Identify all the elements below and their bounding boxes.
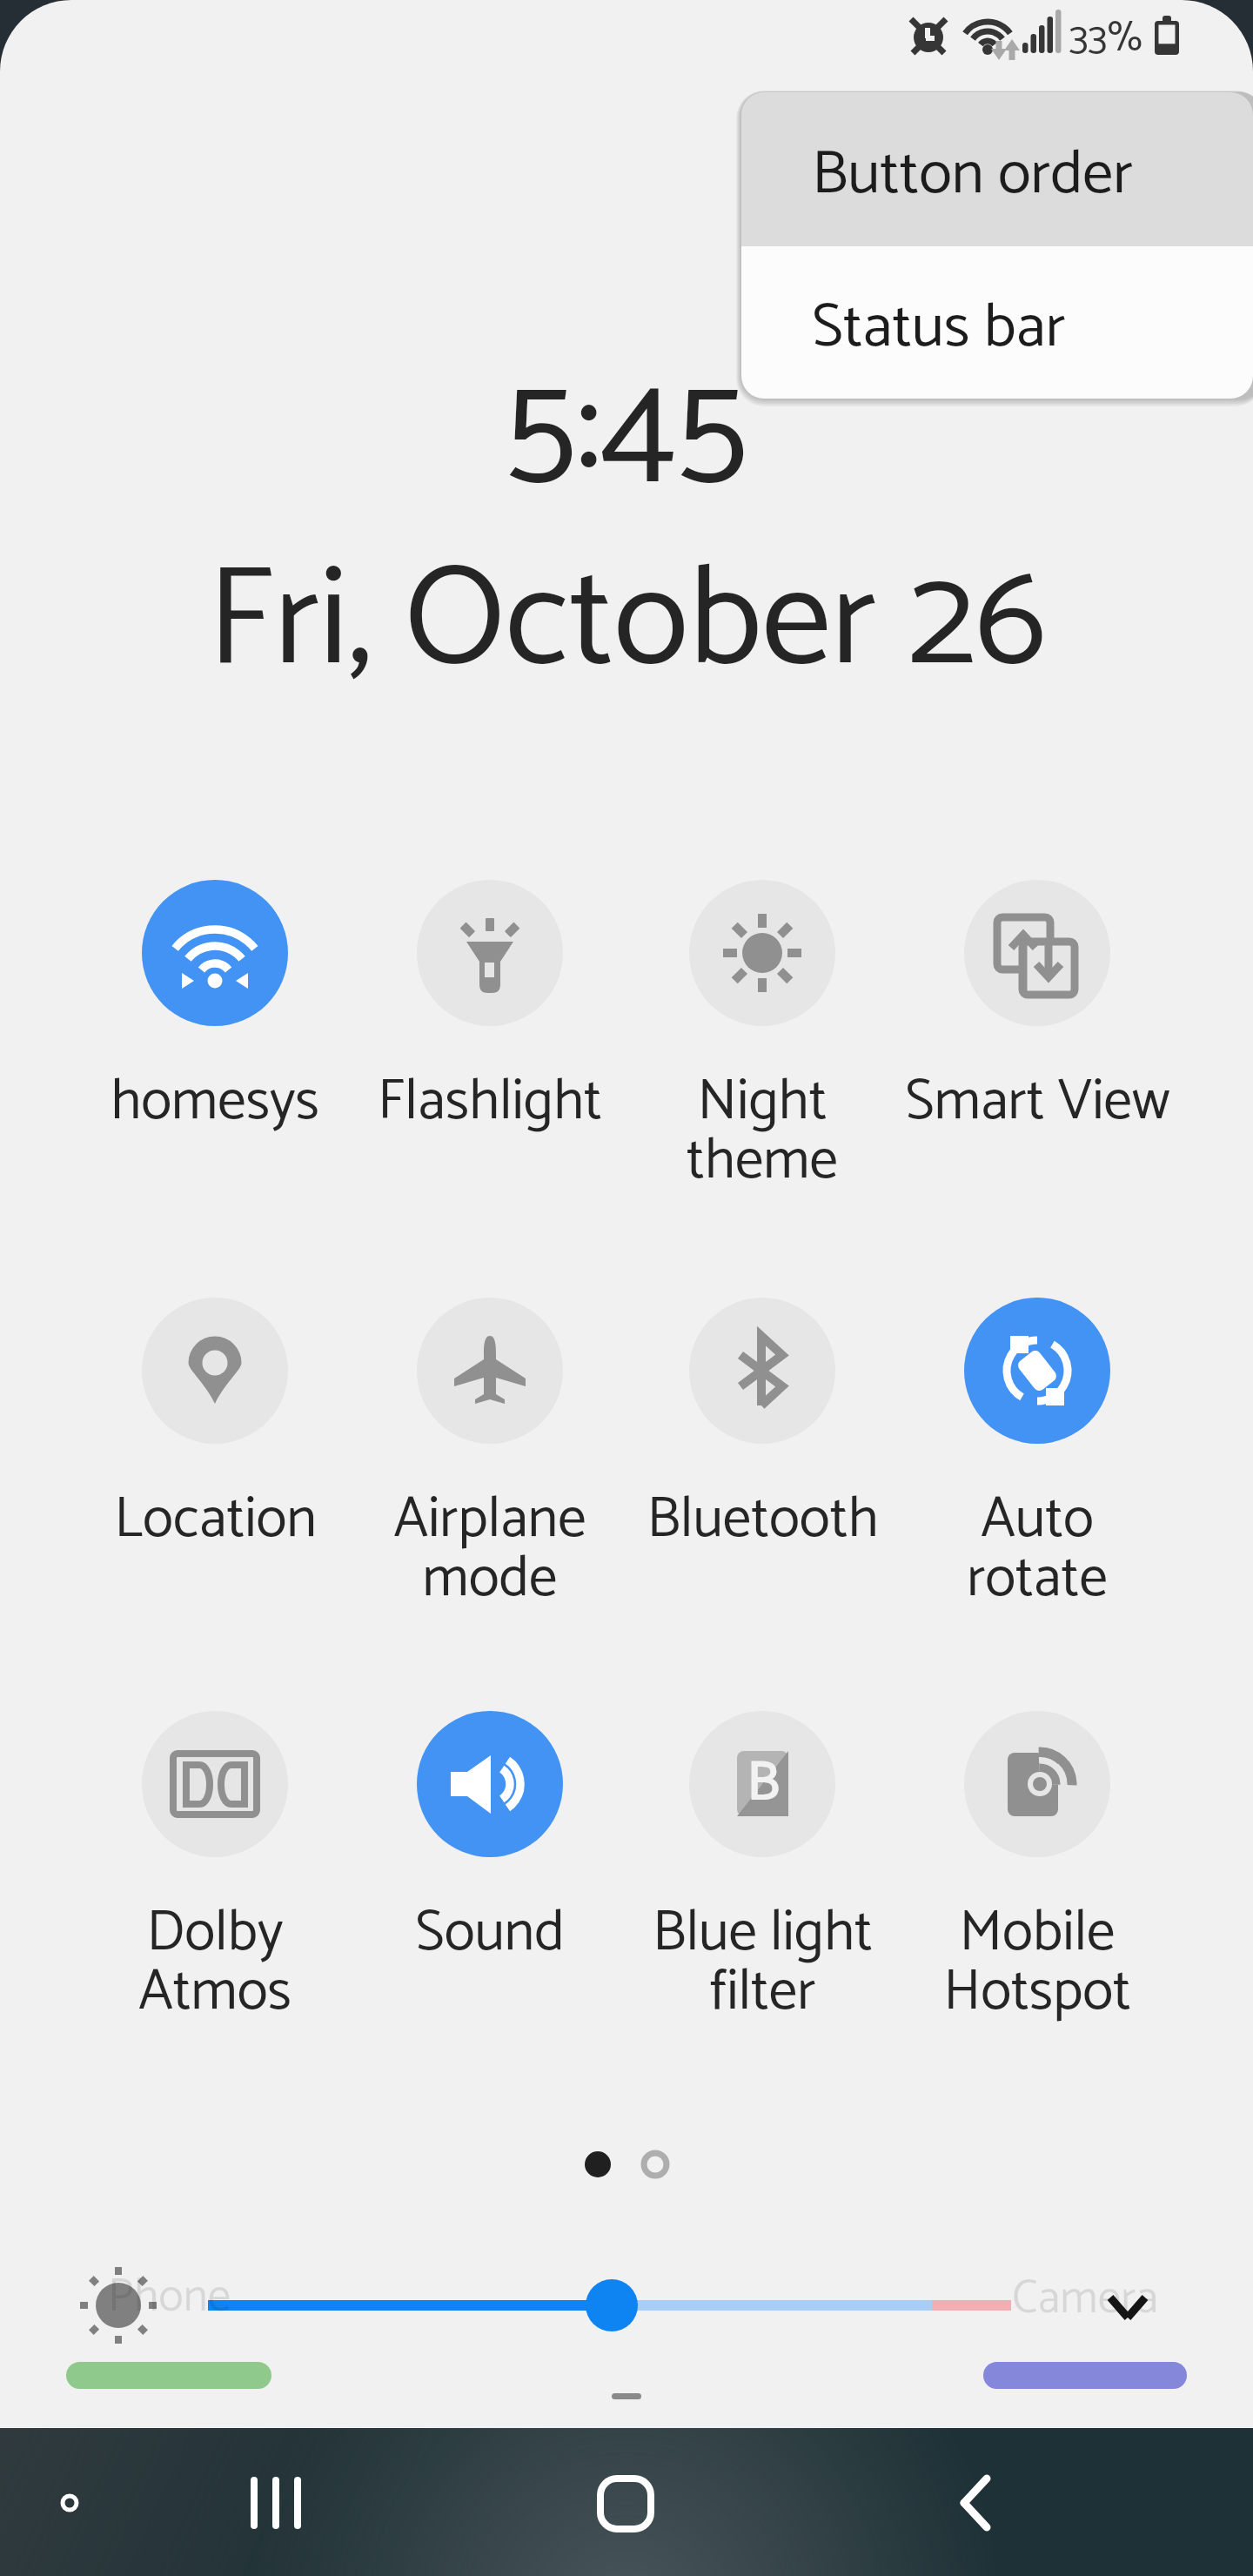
button[interactable]: Smart View [901, 880, 1174, 1149]
staticText: Status bar [812, 278, 1066, 379]
button[interactable]: Location [78, 1298, 352, 1566]
staticText: Camera [1012, 2262, 1159, 2338]
staticText: Mobile Hotspot [943, 1887, 1131, 2039]
staticText: 33% [1069, 5, 1143, 72]
staticText: Location [114, 1473, 317, 1566]
button[interactable]: Recents [198, 2451, 354, 2555]
button[interactable]: Status bar [741, 246, 1253, 399]
button[interactable]: Night theme [626, 880, 899, 1208]
button[interactable]: Button order [741, 92, 1253, 246]
button[interactable]: Home [573, 2451, 678, 2555]
button[interactable]: homesys [78, 880, 352, 1149]
staticText: Dolby Atmos [138, 1887, 291, 2039]
button[interactable]: Keyboard [35, 2468, 104, 2538]
button[interactable]: Dolby Atmos [78, 1711, 352, 2039]
button[interactable]: Bluetooth [626, 1298, 899, 1566]
button[interactable]: Flashlight [353, 880, 626, 1149]
staticText: 5:45 [505, 312, 748, 549]
button[interactable]: Airplane mode [353, 1298, 626, 1626]
staticText: B [747, 1740, 780, 1828]
staticText: Airplane mode [393, 1473, 586, 1626]
staticText: homesys [111, 1056, 319, 1149]
button[interactable]: Sound [353, 1711, 626, 1980]
button[interactable]: Mobile Hotspot [901, 1711, 1174, 2039]
button[interactable]: Auto rotate [901, 1298, 1174, 1626]
staticText: Blue light filter [653, 1887, 873, 2039]
staticText: Button order [812, 125, 1133, 225]
staticText: Fri, October 26 [207, 509, 1047, 737]
staticText: Phone [108, 2260, 231, 2336]
button[interactable]: Back [923, 2451, 1028, 2555]
staticText: Auto rotate [967, 1473, 1108, 1626]
button[interactable]: B [626, 1711, 899, 2039]
staticText: Sound [415, 1887, 565, 1980]
staticText: Night theme [687, 1056, 838, 1208]
staticText: Smart View [905, 1056, 1170, 1149]
staticText: Bluetooth [647, 1473, 879, 1566]
staticText: Flashlight [378, 1056, 602, 1149]
